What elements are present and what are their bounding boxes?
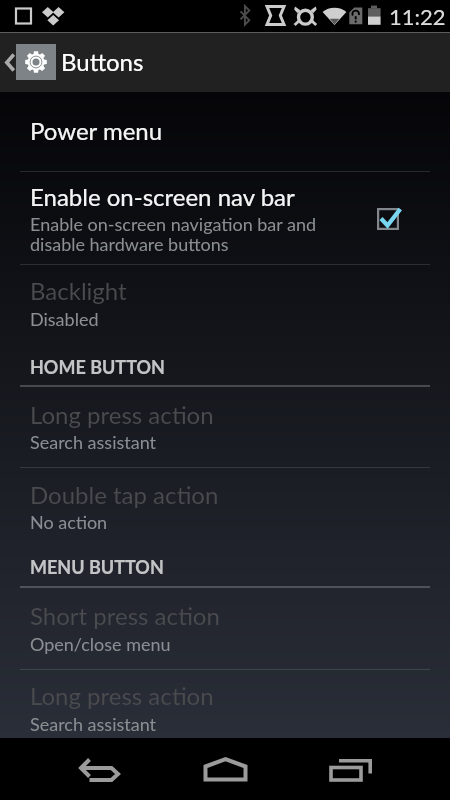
staticText: No action [30,511,108,533]
staticText: Buttons [61,47,144,76]
button[interactable] [0,172,450,264]
button[interactable]: Navigate up to Settings [0,32,450,92]
button[interactable]: Recent apps [313,738,388,800]
button[interactable] [0,669,450,738]
button[interactable] [0,468,450,545]
staticText: Backlight [30,276,127,305]
button[interactable]: Home [188,738,263,800]
staticText: Enable on-screen navigation bar and disa… [30,213,317,255]
button[interactable] [0,106,450,171]
staticText: Search assistant [30,431,157,453]
button[interactable] [0,591,450,668]
staticText: Search assistant [30,713,157,735]
staticText: HOME BUTTON [30,356,165,378]
staticText: MENU BUTTON [30,556,164,578]
staticText: 11:22 [389,3,446,29]
button[interactable]: Back [63,738,138,800]
staticText: Long press action [30,400,214,429]
staticText: Disabled [30,308,99,330]
staticText: Short press action [30,601,220,630]
staticText: Open/close menu [30,633,171,655]
button[interactable] [0,265,450,340]
staticText: Power menu [30,116,163,145]
button[interactable] [0,390,450,467]
staticText: Enable on-screen nav bar [30,182,295,211]
staticText: Double tap action [30,480,219,509]
staticText: Long press action [30,681,214,710]
